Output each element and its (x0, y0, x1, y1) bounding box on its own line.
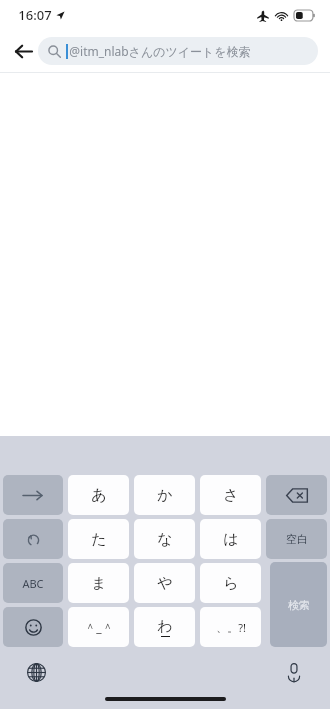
button[interactable]: Change keyboard language (22, 658, 50, 686)
button[interactable]: ま (68, 563, 129, 603)
staticText: や (157, 574, 173, 593)
staticText: た (91, 530, 107, 549)
staticText: か (157, 486, 173, 505)
staticText: さ (223, 486, 239, 505)
staticText: ま (91, 574, 107, 593)
button[interactable]: @itm_nlabさんのツイートを検索 (38, 37, 318, 65)
button[interactable]: Undo (3, 519, 63, 559)
button[interactable]: は (200, 519, 261, 559)
staticText: 検索 (288, 598, 310, 612)
button[interactable]: た (68, 519, 129, 559)
button[interactable]: か (134, 475, 195, 515)
staticText: は (223, 530, 239, 549)
button[interactable]: さ (200, 475, 261, 515)
button[interactable]: Back (8, 36, 38, 66)
staticText: な (157, 530, 173, 549)
staticText: あ (91, 486, 107, 505)
button[interactable]: Voice input (280, 658, 308, 686)
staticText: わ (157, 617, 173, 636)
button[interactable]: ＾_＾ (68, 607, 129, 647)
button[interactable]: わ (134, 607, 195, 647)
button[interactable]: あ (68, 475, 129, 515)
button[interactable]: ら (200, 563, 261, 603)
button[interactable]: Emoji (3, 607, 63, 647)
button[interactable]: ABC (3, 563, 63, 603)
button[interactable]: 、。?! (200, 607, 261, 647)
staticText: ABC (22, 576, 44, 591)
staticText: ＾_＾ (84, 619, 114, 635)
staticText: 空白 (286, 532, 308, 546)
button[interactable]: な (134, 519, 195, 559)
button[interactable]: Delete (266, 475, 327, 515)
staticText: 、。?! (216, 620, 246, 635)
staticText: ら (223, 574, 239, 593)
staticText: @itm_nlabさんのツイートを検索 (69, 43, 251, 59)
staticText: 16:07 (18, 6, 52, 24)
button[interactable]: Next candidate (3, 475, 63, 515)
button[interactable]: 空白 (266, 519, 327, 559)
button[interactable]: や (134, 563, 195, 603)
button[interactable]: 検索 (270, 562, 327, 647)
